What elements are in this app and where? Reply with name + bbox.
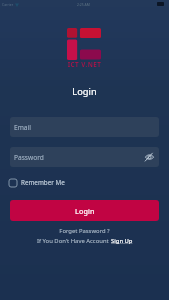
staticText: Login <box>75 206 95 216</box>
staticText: Carrier <box>2 2 14 7</box>
staticText: Remember Me <box>21 178 65 187</box>
staticText: Login <box>0 85 169 98</box>
staticText: Email <box>14 123 31 132</box>
staticText: ICT V.NET <box>0 60 169 69</box>
staticText: If You Don't Have Account <box>37 237 111 245</box>
button[interactable]: Remember Me <box>9 178 65 187</box>
button[interactable]: Email <box>10 117 159 137</box>
button[interactable]: Sign Up <box>111 237 133 245</box>
button[interactable]: Forget Password ? <box>0 227 169 235</box>
staticText: 2:25 AM <box>77 2 90 7</box>
button[interactable]: Show password <box>143 151 155 163</box>
button[interactable]: Password <box>10 147 159 167</box>
staticText: Password <box>14 153 44 162</box>
button[interactable]: Login <box>10 200 159 221</box>
